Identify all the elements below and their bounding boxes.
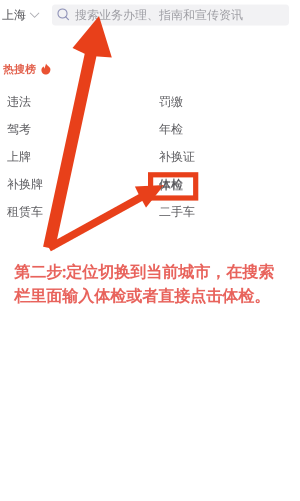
staticText: 租赁车 [7, 204, 43, 219]
staticText: 补换证 [159, 149, 195, 164]
button[interactable]: 驾考 [7, 115, 127, 143]
staticText: 二手车 [159, 204, 195, 219]
button[interactable]: 年检 [159, 115, 279, 143]
staticText: 搜索业务办理、指南和宣传资讯 [75, 8, 243, 22]
staticText: 第二步:定位切换到当前城市，在搜索 [14, 261, 274, 282]
button[interactable]: 上牌 [7, 143, 127, 170]
button[interactable]: 搜索业务办理、指南和宣传资讯 [52, 4, 289, 25]
button[interactable]: 二手车 [159, 198, 279, 225]
staticText: 体检 [159, 177, 183, 192]
button[interactable]: 上海 [0, 3, 40, 27]
staticText: 年检 [159, 122, 183, 137]
staticText: 罚缴 [159, 94, 183, 109]
button[interactable]: 罚缴 [159, 88, 279, 115]
button[interactable]: 违法 [7, 88, 127, 115]
staticText: 热搜榜 [3, 63, 36, 76]
button[interactable]: 体检 [159, 170, 279, 198]
staticText: 驾考 [7, 122, 31, 137]
staticText: 上海 [2, 8, 26, 22]
staticText: 补换牌 [7, 177, 43, 192]
staticText: 上牌 [7, 149, 31, 164]
button[interactable]: 补换证 [159, 143, 279, 170]
button[interactable]: 补换牌 [7, 170, 127, 198]
button[interactable]: 租赁车 [7, 198, 127, 225]
staticText: 栏里面输入体检或者直接点击体检。 [14, 286, 270, 306]
staticText: 体检 [159, 178, 183, 193]
staticText: 违法 [7, 94, 31, 109]
